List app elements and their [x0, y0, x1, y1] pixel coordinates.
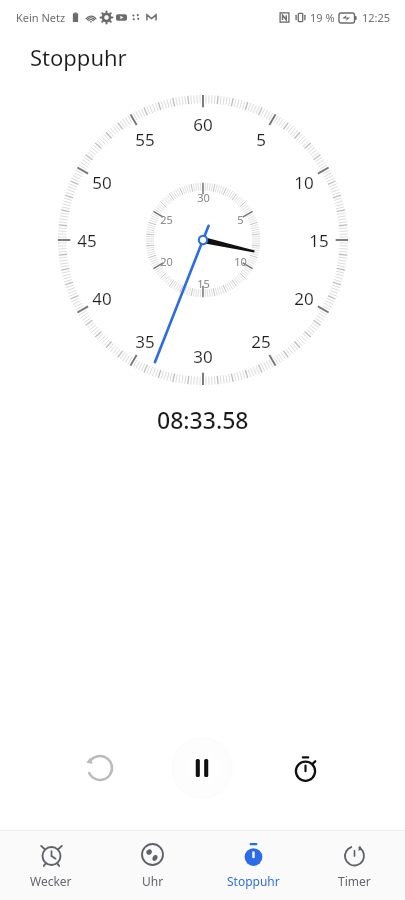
staticText: 20 [160, 254, 173, 269]
staticText: Stoppuhr [30, 42, 127, 72]
staticText: 20 [294, 287, 314, 310]
staticText: 25 [251, 330, 271, 353]
staticText: 60 [193, 113, 213, 136]
staticText: Wecker [30, 873, 72, 889]
staticText: 40 [92, 287, 112, 310]
staticText: 50 [92, 171, 112, 194]
staticText: 15 [197, 276, 210, 291]
staticText: 10 [294, 171, 314, 194]
staticText: 15 [309, 229, 329, 252]
button[interactable]: Pause [171, 737, 233, 799]
staticText: 30 [197, 190, 210, 205]
staticText: 5 [256, 128, 266, 151]
staticText: 35 [135, 330, 155, 353]
staticText: 12:25 [362, 10, 391, 25]
staticText: 25 [160, 212, 173, 227]
button[interactable]: Timer [304, 831, 405, 900]
staticText: 45 [77, 229, 97, 252]
button[interactable]: Uhr [102, 831, 203, 900]
staticText: Uhr [142, 873, 164, 889]
button[interactable]: Wecker [0, 831, 102, 900]
staticText: 55 [135, 128, 155, 151]
button[interactable]: Stoppuhr [203, 831, 304, 900]
staticText: 5 [237, 212, 244, 227]
button[interactable]: Runde [277, 740, 333, 796]
button[interactable]: Zurücksetzen [72, 740, 128, 796]
staticText: 08:33.58 [157, 404, 249, 435]
staticText: 30 [193, 345, 213, 368]
staticText: 10 [234, 254, 247, 269]
staticText: Stoppuhr [227, 873, 280, 889]
staticText: 19 % [310, 10, 335, 25]
staticText: Timer [338, 873, 371, 889]
staticText: Kein Netz [16, 10, 66, 25]
